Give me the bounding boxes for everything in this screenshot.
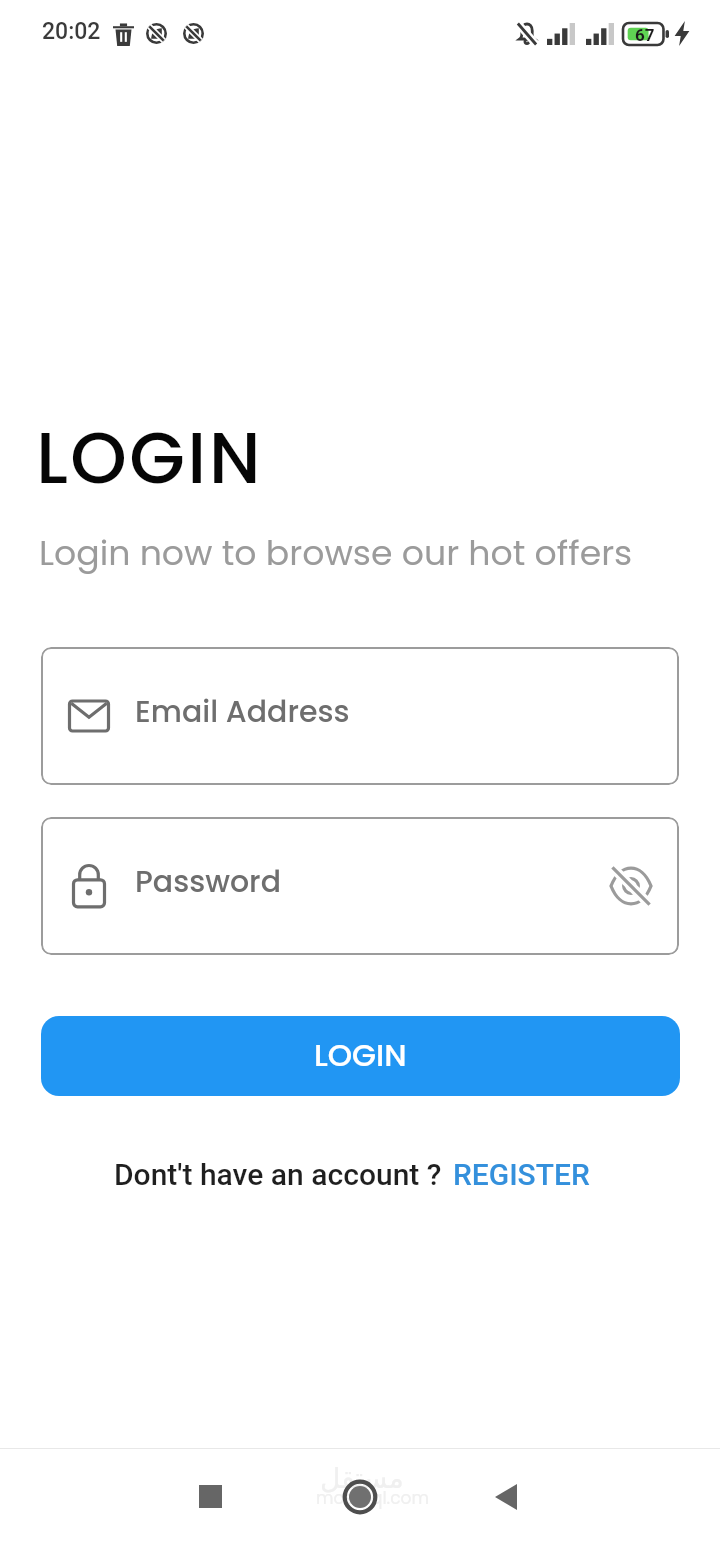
staticText: REGISTER xyxy=(453,1157,590,1192)
staticText: mostaql.com xyxy=(316,1486,429,1510)
staticText: Login now to browse our hot offers xyxy=(39,529,633,578)
staticText: 20:02 xyxy=(42,18,101,45)
staticText: LOGIN xyxy=(36,407,263,508)
button[interactable]: Password xyxy=(41,817,679,955)
button[interactable]: REGISTER xyxy=(453,1157,590,1192)
staticText: مستقل xyxy=(320,1462,404,1495)
button[interactable]: Email Address xyxy=(41,647,679,785)
staticText: Password xyxy=(135,861,281,903)
staticText: LOGIN xyxy=(314,1033,407,1076)
button[interactable]: Back xyxy=(489,1478,523,1516)
button[interactable]: LOGIN xyxy=(41,1016,680,1096)
staticText: 67 xyxy=(635,25,655,45)
button[interactable]: Show password xyxy=(601,856,661,916)
staticText: Email Address xyxy=(135,691,350,733)
button[interactable]: Home xyxy=(340,1477,380,1517)
staticText: Dont't have an account ? xyxy=(114,1157,442,1192)
